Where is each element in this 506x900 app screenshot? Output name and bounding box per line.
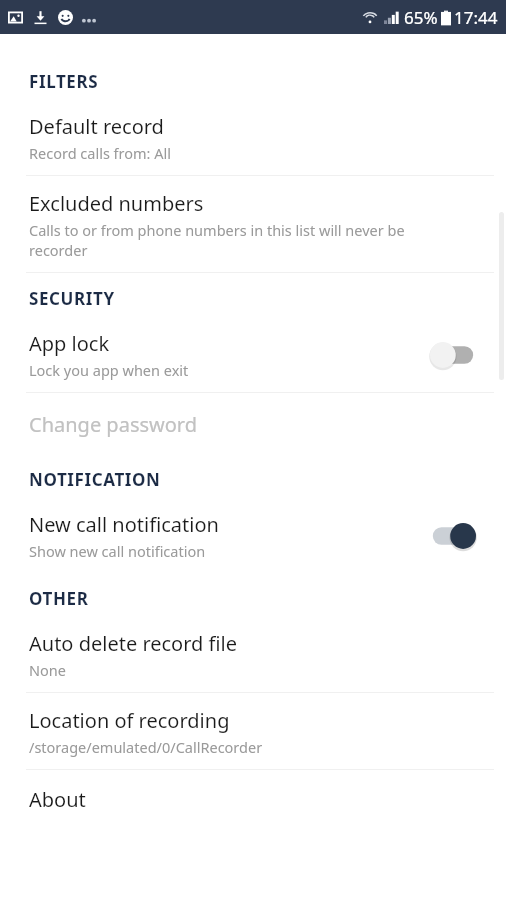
button[interactable]: App lock <box>0 316 506 392</box>
staticText: Default record <box>29 113 164 140</box>
staticText: 65% <box>404 6 438 29</box>
staticText: New call notification <box>29 511 219 538</box>
button[interactable]: Excluded numbers <box>0 176 506 272</box>
staticText: Location of recording <box>29 707 230 734</box>
staticText: 17:44 <box>454 6 498 29</box>
button[interactable]: Toggle off <box>429 341 477 369</box>
button[interactable]: About <box>0 770 506 827</box>
staticText: /storage/emulated/0/CallRecorder <box>29 737 263 757</box>
staticText: Lock you app when exit <box>29 360 189 380</box>
staticText: Calls to or from phone numbers in this l… <box>29 220 405 260</box>
staticText: Excluded numbers <box>29 190 204 217</box>
staticText: Show new call notification <box>29 541 206 561</box>
staticText: Record calls from: All <box>29 143 172 163</box>
button[interactable]: Default record <box>0 99 506 175</box>
staticText: NOTIFICATION <box>29 468 161 491</box>
staticText: SECURITY <box>29 287 115 310</box>
button[interactable]: New call notification <box>0 497 506 573</box>
button[interactable]: Change password <box>0 393 506 454</box>
staticText: App lock <box>29 330 110 357</box>
staticText: OTHER <box>29 587 89 610</box>
staticText: None <box>29 660 66 680</box>
staticText: Change password <box>29 411 198 438</box>
staticText: Auto delete record file <box>29 630 238 657</box>
staticText: FILTERS <box>29 70 99 93</box>
button[interactable]: Toggle on <box>429 522 477 550</box>
button[interactable]: Auto delete record file <box>0 616 506 692</box>
staticText: About <box>29 786 86 813</box>
button[interactable]: Location of recording <box>0 693 506 769</box>
